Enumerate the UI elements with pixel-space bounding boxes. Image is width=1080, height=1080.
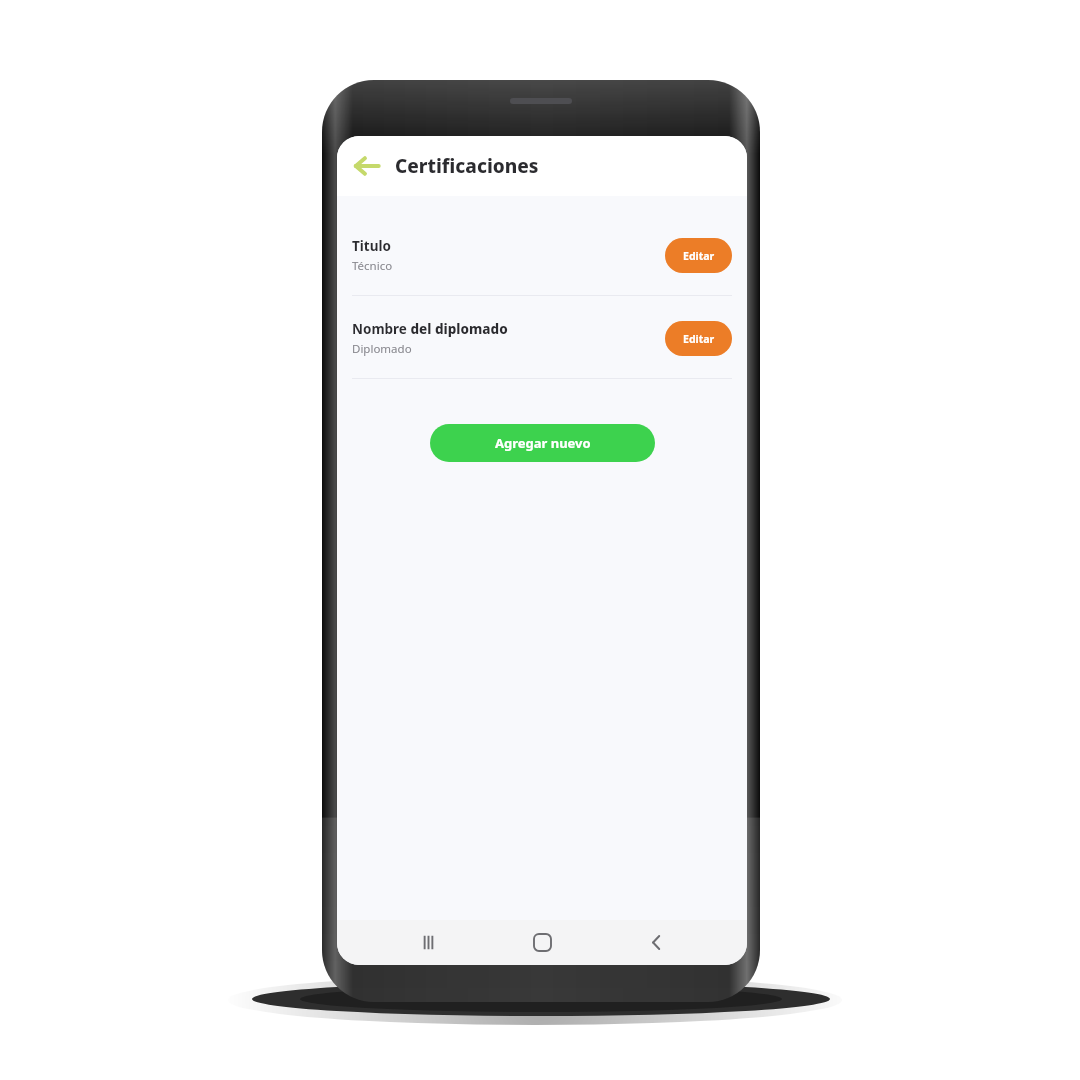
button[interactable]: Agregar nuevo xyxy=(430,424,655,462)
staticText: Titulo xyxy=(352,237,391,255)
staticText: Certificaciones xyxy=(395,153,539,179)
button[interactable]: Editar xyxy=(665,321,732,356)
button[interactable]: Home xyxy=(519,920,565,965)
staticText: Nombre del diplomado xyxy=(352,320,508,338)
staticText: Técnico xyxy=(352,258,393,274)
staticText: Editar xyxy=(683,249,715,263)
staticText: Diplomado xyxy=(352,341,412,357)
staticText: Agregar nuevo xyxy=(495,434,591,452)
button[interactable]: Recents xyxy=(405,920,451,965)
button[interactable]: Back xyxy=(345,144,389,188)
button[interactable]: Editar xyxy=(665,238,732,273)
staticText: Editar xyxy=(683,332,715,346)
button[interactable]: Back xyxy=(633,920,679,965)
